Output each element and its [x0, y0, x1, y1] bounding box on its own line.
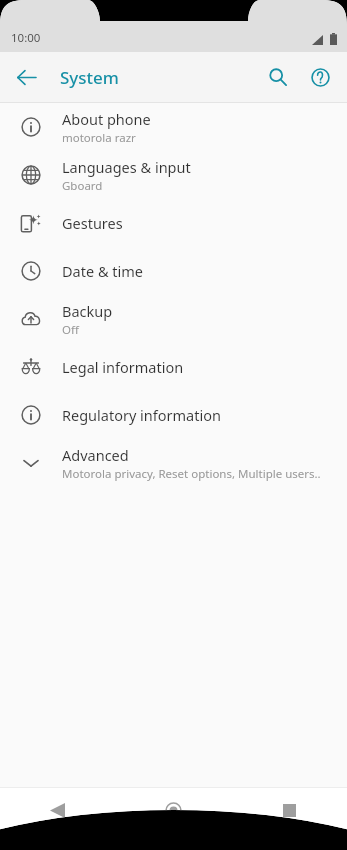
staticText: System — [60, 66, 119, 89]
button[interactable]: Advanced — [0, 439, 347, 487]
button[interactable]: Backup — [0, 295, 347, 343]
button[interactable]: Back — [4, 55, 48, 99]
staticText: Regulatory information — [62, 405, 221, 425]
button[interactable]: Home — [115, 788, 231, 832]
button[interactable]: About phone — [0, 103, 347, 151]
button[interactable]: Search — [257, 56, 299, 98]
button[interactable]: Back — [0, 788, 115, 832]
button[interactable]: Regulatory information — [0, 391, 347, 439]
staticText: 10:00 — [11, 30, 41, 46]
staticText: Off — [62, 322, 79, 338]
button[interactable]: Recents — [231, 788, 347, 832]
staticText: Advanced — [62, 445, 129, 465]
button[interactable]: Date & time — [0, 247, 347, 295]
button[interactable]: Help — [299, 56, 341, 98]
staticText: Date & time — [62, 261, 143, 281]
staticText: Motorola privacy, Reset options, Multipl… — [62, 466, 321, 482]
button[interactable]: Legal information — [0, 343, 347, 391]
staticText: Backup — [62, 301, 113, 321]
staticText: Gestures — [62, 213, 123, 233]
staticText: motorola razr — [62, 130, 136, 146]
staticText: About phone — [62, 109, 151, 129]
staticText: Gboard — [62, 178, 103, 194]
button[interactable]: Gestures — [0, 199, 347, 247]
button[interactable]: Languages & input — [0, 151, 347, 199]
staticText: Languages & input — [62, 157, 191, 177]
staticText: Legal information — [62, 357, 184, 377]
